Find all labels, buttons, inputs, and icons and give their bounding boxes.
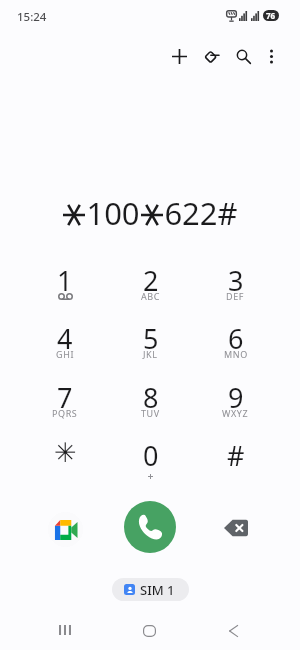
button[interactable]: Search	[227, 40, 260, 73]
button[interactable]: #	[193, 437, 278, 491]
staticText: ABC	[141, 290, 161, 302]
button[interactable]: Video call	[48, 512, 83, 547]
staticText: #	[227, 437, 245, 474]
staticText: JKL	[143, 348, 158, 360]
staticText: 2	[143, 262, 159, 299]
button[interactable]: ✳	[22, 437, 108, 491]
button[interactable]: 4	[22, 320, 108, 374]
staticText: 622#	[164, 192, 238, 234]
button[interactable]: Backspace	[216, 511, 256, 545]
button[interactable]: Recent apps	[45, 613, 85, 647]
button[interactable]: 1	[22, 262, 108, 316]
staticText: 1	[57, 262, 73, 299]
button[interactable]: Label	[195, 40, 228, 73]
staticText: ✳	[54, 437, 77, 468]
staticText: MNO	[224, 348, 248, 360]
button[interactable]: 9	[193, 379, 278, 433]
button[interactable]: 2	[108, 262, 193, 316]
staticText: 76	[266, 10, 276, 21]
staticText: GHI	[56, 348, 75, 360]
button[interactable]: Call	[124, 501, 176, 553]
staticText: 8	[143, 379, 159, 416]
staticText: 5	[143, 320, 159, 357]
staticText: WXYZ	[222, 407, 249, 419]
staticText: TUV	[141, 407, 160, 419]
staticText: 3	[228, 262, 244, 299]
button[interactable]: More options	[255, 40, 288, 73]
staticText: 9	[228, 379, 244, 416]
button[interactable]: 6	[193, 320, 278, 374]
staticText: DEF	[226, 290, 245, 302]
button[interactable]: 3	[193, 262, 278, 316]
button[interactable]: 5	[108, 320, 193, 374]
button[interactable]: Add contact	[163, 40, 196, 73]
staticText: 15:24	[17, 9, 47, 25]
button[interactable]: 7	[22, 379, 108, 433]
button[interactable]: SIM 1	[112, 578, 189, 601]
staticText: 7	[57, 379, 73, 416]
staticText: 4	[57, 320, 73, 357]
button[interactable]: Home	[129, 614, 169, 648]
staticText: 100	[86, 192, 140, 234]
staticText: PQRS	[52, 407, 78, 419]
button[interactable]: 0	[108, 437, 193, 491]
staticText: 6	[228, 320, 244, 357]
staticText: SIM 1	[140, 581, 175, 599]
button[interactable]: Back	[213, 614, 253, 648]
staticText: 0	[143, 437, 159, 474]
button[interactable]: 8	[108, 379, 193, 433]
